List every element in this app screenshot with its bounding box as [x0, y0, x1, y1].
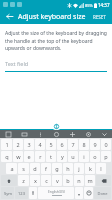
button[interactable]: t [46, 151, 56, 162]
staticText: m [87, 177, 93, 184]
button[interactable]: Clipboard [16, 130, 32, 138]
button[interactable]: Back [4, 11, 15, 22]
button[interactable]: l [96, 163, 106, 174]
button[interactable]: q [1, 151, 12, 162]
button[interactable]: Text field [5, 60, 107, 72]
button[interactable]: 7 [68, 139, 78, 150]
staticText: p [104, 153, 108, 160]
button[interactable]: Space [38, 187, 74, 199]
staticText: 123 [18, 191, 25, 196]
button[interactable]: x [30, 175, 40, 186]
button[interactable]: f [41, 163, 51, 174]
staticText: 0 [104, 141, 108, 148]
staticText: h [66, 165, 70, 172]
staticText: n [77, 177, 81, 184]
button[interactable]: y [57, 151, 67, 162]
button[interactable]: Voice input [29, 187, 37, 199]
staticText: j [78, 165, 80, 172]
staticText: 3 [27, 141, 31, 148]
staticText: 4 [38, 141, 42, 148]
staticText: i [83, 153, 85, 160]
button[interactable]: 6 [57, 139, 67, 150]
staticText: Adjust the size of the keyboard by dragg… [5, 30, 107, 51]
staticText: k [89, 165, 92, 172]
staticText: Adjust keyboard size [18, 12, 86, 22]
button[interactable]: Period [75, 187, 83, 199]
button[interactable]: Shift [1, 175, 17, 186]
staticText: g [55, 165, 59, 172]
button[interactable]: Sym [1, 187, 14, 199]
staticText: 7 [71, 141, 75, 148]
staticText: v [56, 177, 59, 184]
button[interactable]: o [90, 151, 100, 162]
button[interactable]: Split keyboard [64, 130, 80, 138]
button[interactable]: 1 [1, 139, 12, 150]
staticText: 85% [85, 3, 93, 8]
staticText: e [27, 153, 31, 160]
staticText: English(US) [48, 190, 65, 194]
staticText: 1 [5, 141, 9, 148]
staticText: 9 [93, 141, 97, 148]
button[interactable]: 2 [13, 139, 23, 150]
staticText: t [50, 153, 52, 160]
button[interactable]: Text editing [0, 130, 16, 138]
button[interactable]: Settings [80, 130, 96, 138]
button[interactable]: w [13, 151, 23, 162]
staticText: 8 [82, 141, 86, 148]
button[interactable]: j [74, 163, 84, 174]
staticText: 14:37 [98, 2, 110, 8]
staticText: o [93, 153, 97, 160]
button[interactable]: e [24, 151, 34, 162]
staticText: s [22, 165, 25, 172]
staticText: c [45, 177, 48, 184]
button[interactable]: Emoji [48, 130, 64, 138]
staticText: 5 [49, 141, 53, 148]
staticText: Sym [4, 191, 12, 196]
button[interactable]: Hide toolbar [96, 130, 112, 138]
button[interactable]: 0 [101, 139, 111, 150]
staticText: r [39, 153, 42, 160]
button[interactable]: r [35, 151, 45, 162]
button[interactable]: 4 [35, 139, 45, 150]
button[interactable]: m [85, 175, 95, 186]
button[interactable]: 5 [46, 139, 56, 150]
button[interactable]: c [41, 175, 51, 186]
staticText: x [34, 177, 37, 184]
button[interactable]: g [52, 163, 62, 174]
staticText: 2 [16, 141, 20, 148]
button[interactable]: 9 [90, 139, 100, 150]
staticText: d [33, 165, 37, 172]
button[interactable]: u [68, 151, 78, 162]
staticText: y [61, 153, 64, 160]
button[interactable]: k [85, 163, 95, 174]
button[interactable]: h [63, 163, 73, 174]
staticText: b [66, 177, 70, 184]
button[interactable]: Done [94, 187, 111, 199]
button[interactable]: v [52, 175, 62, 186]
staticText: f [45, 165, 47, 172]
button[interactable]: RESET [91, 11, 108, 23]
button[interactable]: 123 [15, 187, 28, 199]
button[interactable]: Resize keyboard handle [52, 122, 61, 130]
staticText: q [5, 153, 9, 160]
button[interactable]: s [18, 163, 29, 174]
button[interactable]: z [18, 175, 29, 186]
staticText: a [10, 165, 14, 172]
button[interactable]: p [101, 151, 111, 162]
button[interactable]: 3 [24, 139, 34, 150]
staticText: u [71, 153, 75, 160]
staticText: w [16, 153, 21, 160]
staticText: 6 [60, 141, 64, 148]
button[interactable]: a [6, 163, 17, 174]
staticText: RESET [93, 14, 106, 20]
button[interactable]: d [30, 163, 40, 174]
button[interactable]: i [79, 151, 89, 162]
button[interactable]: 8 [79, 139, 89, 150]
button[interactable]: n [74, 175, 84, 186]
staticText: Text field [5, 60, 29, 67]
button[interactable]: Backspace [96, 175, 111, 186]
staticText: l [100, 165, 102, 172]
button[interactable]: Settings menu [32, 130, 48, 138]
button[interactable]: Emoji [84, 187, 93, 199]
button[interactable]: b [63, 175, 73, 186]
